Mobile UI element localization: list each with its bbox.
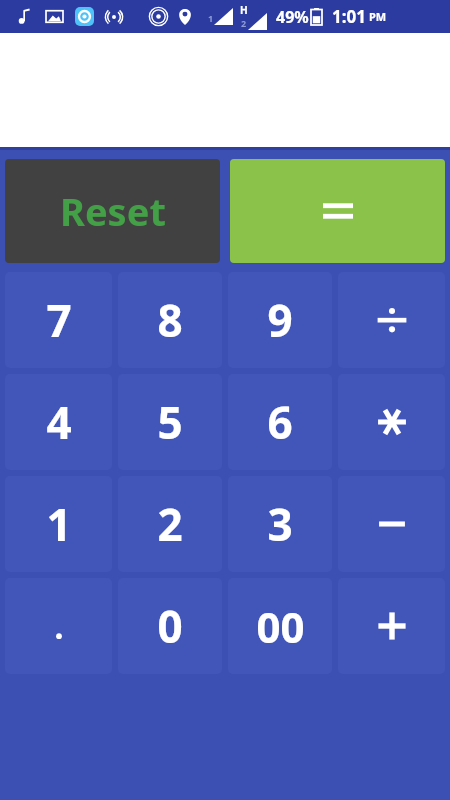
staticText: Reset [60, 185, 166, 237]
button[interactable]: 00 [228, 578, 332, 674]
staticText: 49% [276, 6, 309, 28]
staticText: 1 [208, 12, 214, 24]
staticText: 00 [256, 598, 305, 655]
button[interactable]: 3 [228, 476, 332, 572]
button[interactable]: 8 [118, 272, 222, 368]
staticText: 3 [267, 494, 293, 554]
staticText: 1:01 [332, 5, 366, 28]
staticText: 5 [157, 392, 183, 452]
button[interactable]: 4 [5, 374, 112, 470]
button[interactable]: Decimal point [5, 578, 112, 674]
button[interactable]: Equals [230, 159, 445, 263]
button[interactable]: 1 [5, 476, 112, 572]
staticText: 4 [46, 392, 72, 452]
button[interactable]: 7 [5, 272, 112, 368]
button[interactable]: 2 [118, 476, 222, 572]
staticText: 2 [241, 17, 247, 29]
button[interactable]: 0 [118, 578, 222, 674]
button[interactable]: Subtract [338, 476, 445, 572]
staticText: 1 [46, 494, 72, 554]
staticText: 0 [157, 596, 183, 656]
button[interactable]: Divide [338, 272, 445, 368]
button[interactable]: Multiply [338, 374, 445, 470]
button[interactable]: 9 [228, 272, 332, 368]
button[interactable]: 5 [118, 374, 222, 470]
staticText: 6 [267, 392, 293, 452]
button[interactable]: Add [338, 578, 445, 674]
staticText: 9 [267, 290, 293, 350]
button[interactable]: 6 [228, 374, 332, 470]
staticText: 7 [46, 290, 72, 350]
button[interactable]: Reset [5, 159, 220, 263]
staticText: PM [369, 9, 387, 24]
staticText: H [240, 3, 248, 17]
staticText: 2 [157, 494, 183, 554]
staticText: 8 [157, 290, 183, 350]
